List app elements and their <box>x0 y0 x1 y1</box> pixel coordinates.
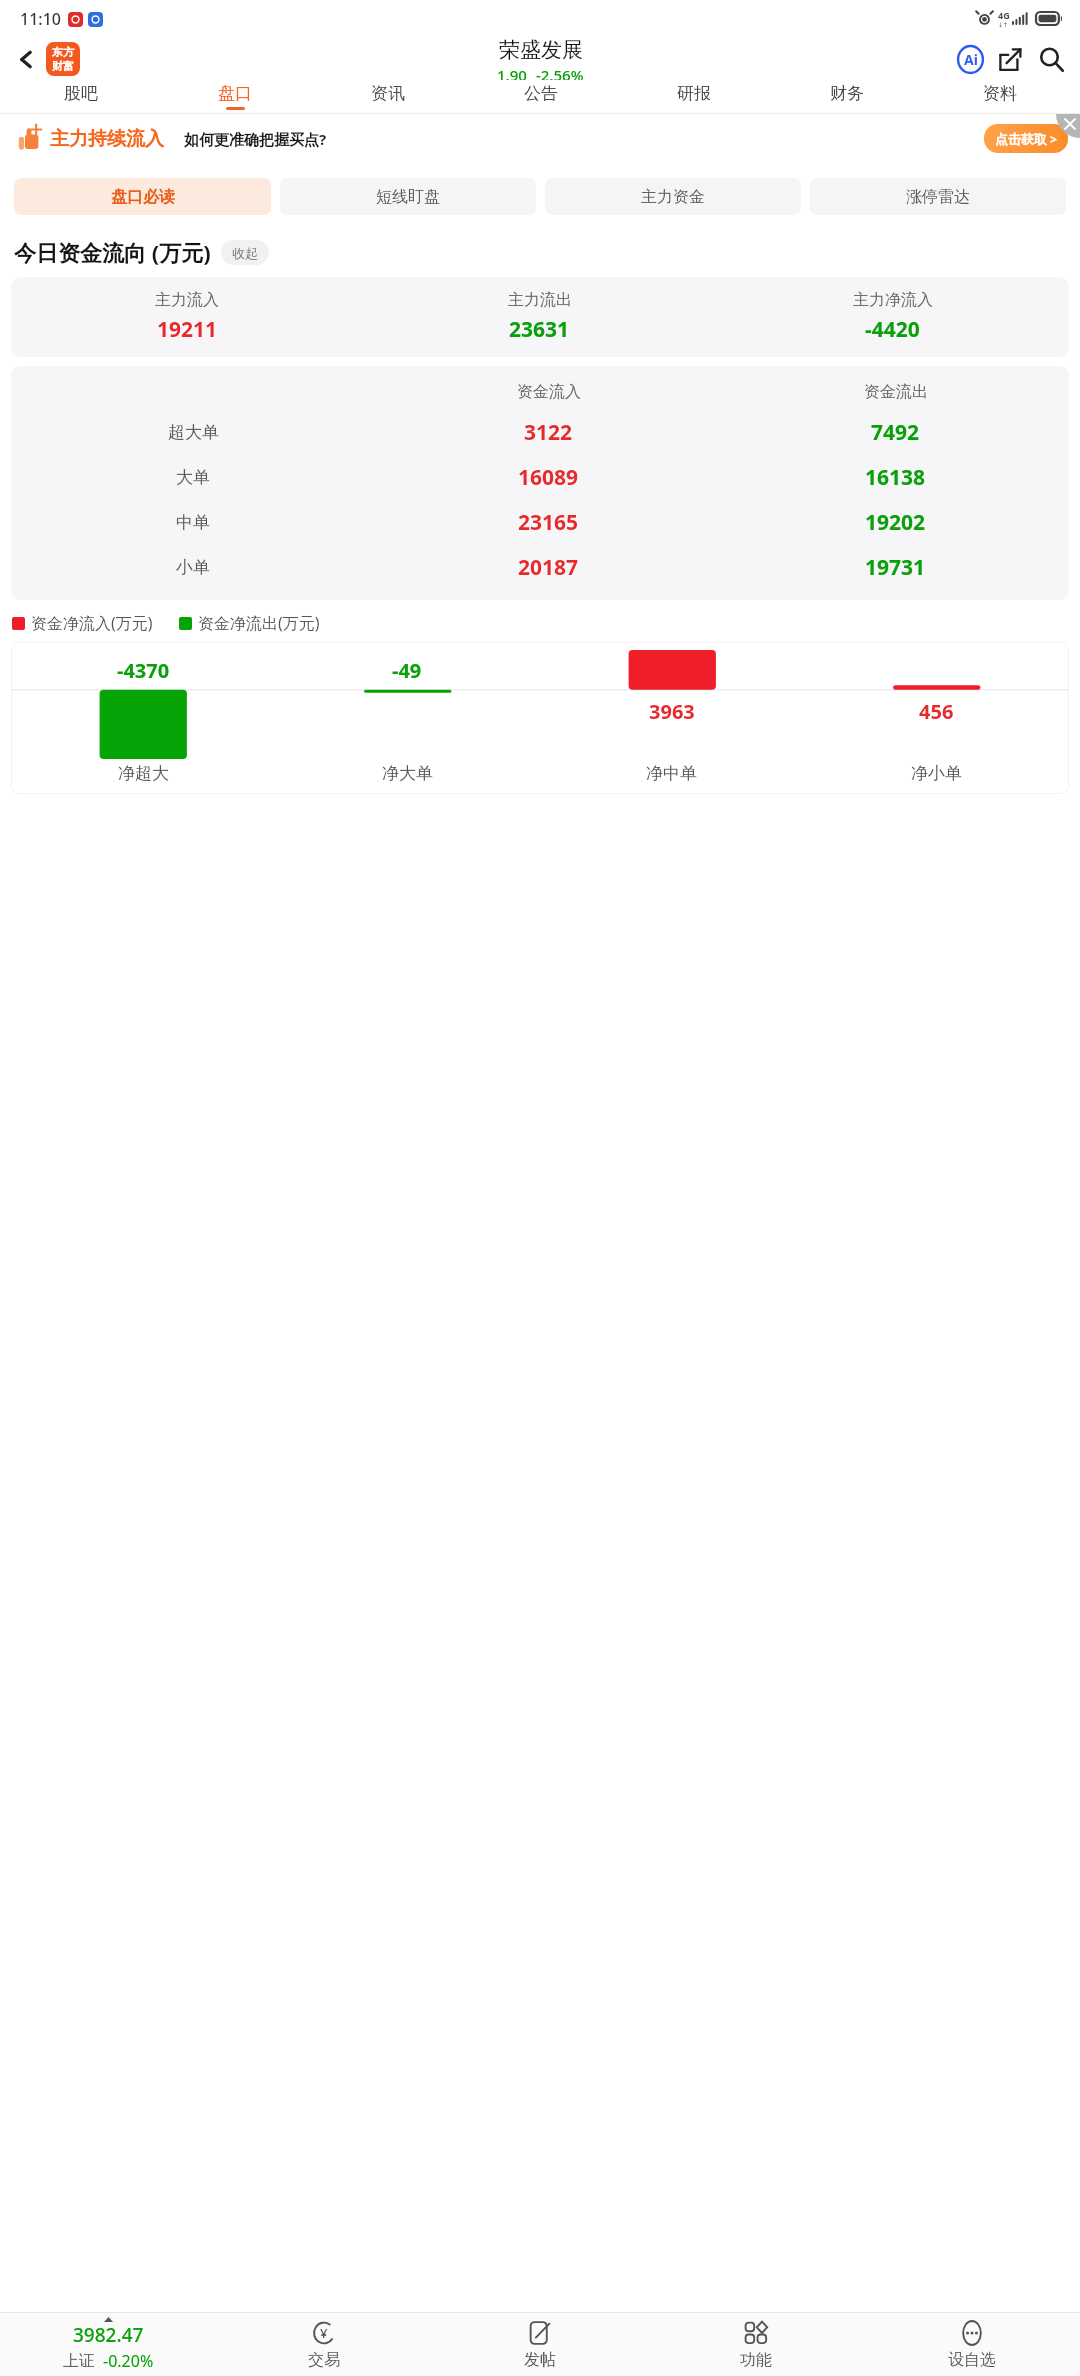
staticText: 小单 <box>176 557 210 578</box>
staticText: 净超大 <box>118 763 169 784</box>
staticText: 研报 <box>677 83 711 104</box>
button[interactable]: 主力资金 <box>545 178 801 215</box>
staticText: 盘口 <box>218 83 252 104</box>
staticText: 1.90 <box>497 65 527 80</box>
staticText: 23631 <box>509 315 570 344</box>
button[interactable]: 研报 <box>617 80 770 113</box>
staticText: 20187 <box>518 553 579 582</box>
staticText: 456 <box>919 698 954 725</box>
staticText: 净小单 <box>911 763 962 784</box>
staticText: 今日资金流向 (万元) <box>14 237 211 267</box>
staticText: -2.56% <box>536 65 584 80</box>
button[interactable]: ¥ <box>216 2313 432 2376</box>
button[interactable]: 超大单 <box>11 418 1069 447</box>
button[interactable]: 3982.47 <box>0 2313 216 2376</box>
staticText: ↓↑ <box>998 21 1009 28</box>
staticText: 资金净流出(万元) <box>198 612 320 634</box>
staticText: 主力流入 <box>155 290 219 310</box>
staticText: -4370 <box>117 657 170 684</box>
staticText: 主力净流入 <box>853 290 933 310</box>
button[interactable]: East Money home <box>46 42 80 76</box>
staticText: 功能 <box>740 2350 772 2370</box>
staticText: -4420 <box>865 315 920 344</box>
staticText: 公告 <box>524 83 558 104</box>
staticText: 超大单 <box>168 422 219 443</box>
staticText: 23165 <box>518 508 579 537</box>
staticText: > <box>1050 131 1057 147</box>
button[interactable]: 发帖 <box>432 2313 648 2376</box>
button[interactable]: 股吧 <box>4 80 158 113</box>
button[interactable]: 设自选 <box>864 2313 1080 2376</box>
staticText: 19731 <box>865 553 926 582</box>
staticText: -49 <box>392 657 422 684</box>
staticText: 设自选 <box>948 2350 996 2370</box>
button[interactable]: Share <box>990 39 1030 79</box>
staticText: 股吧 <box>64 83 98 104</box>
staticText: 4G <box>998 9 1010 21</box>
staticText: 发帖 <box>524 2350 556 2370</box>
staticText: 短线盯盘 <box>376 187 440 207</box>
staticText: 交易 <box>308 2350 340 2370</box>
button[interactable]: Search <box>1030 38 1072 80</box>
staticText: 3963 <box>649 698 695 725</box>
button[interactable]: 财务 <box>770 80 923 113</box>
button[interactable]: 收起 <box>221 240 269 265</box>
staticText: 盘口必读 <box>111 187 175 207</box>
staticText: ¥ <box>320 2324 328 2342</box>
button[interactable]: 点击获取 <box>984 124 1068 153</box>
staticText: 如何更准确把握买点? <box>184 129 327 149</box>
button[interactable]: 小单 <box>11 553 1069 582</box>
staticText: 16138 <box>865 463 926 492</box>
staticText: 3122 <box>524 418 573 447</box>
staticText: 荣盛发展 <box>499 37 583 63</box>
staticText: 资金流出 <box>864 382 928 402</box>
staticText: 主力资金 <box>641 187 705 207</box>
staticText: 资金净流入(万元) <box>31 612 153 634</box>
staticText: 点击获取 <box>995 131 1047 147</box>
staticText: 16089 <box>518 463 579 492</box>
staticText: 大单 <box>176 467 210 488</box>
staticText: 收起 <box>232 245 258 261</box>
staticText: 19202 <box>865 508 926 537</box>
button[interactable]: 盘口必读 <box>14 178 271 215</box>
staticText: 东方 <box>52 45 74 59</box>
staticText: 11:10 <box>20 8 61 30</box>
button[interactable]: 主力流入 <box>11 277 1069 357</box>
staticText: 资金流入 <box>517 382 581 402</box>
button[interactable]: 资讯 <box>311 80 464 113</box>
staticText: 财务 <box>830 83 864 104</box>
staticText: 7492 <box>871 418 920 447</box>
button[interactable]: 中单 <box>11 508 1069 537</box>
staticText: 资料 <box>983 83 1017 104</box>
staticText: 财富 <box>52 59 74 73</box>
staticText: 19211 <box>157 315 218 344</box>
staticText: 3982.47 <box>73 2322 144 2348</box>
button[interactable]: 主力持续流入 <box>0 114 1080 163</box>
button[interactable]: 短线盯盘 <box>280 178 536 215</box>
staticText: 主力持续流入 <box>50 127 164 151</box>
staticText: 净中单 <box>646 763 697 784</box>
button[interactable]: 公告 <box>464 80 617 113</box>
button[interactable]: 大单 <box>11 463 1069 492</box>
button[interactable]: AI <box>950 39 990 79</box>
staticText: 资讯 <box>371 83 405 104</box>
button[interactable]: Back <box>6 39 46 79</box>
button[interactable]: Close ad <box>1056 114 1080 138</box>
button[interactable]: 资料 <box>923 80 1076 113</box>
staticText: 主力流出 <box>508 290 572 310</box>
button[interactable]: 功能 <box>648 2313 864 2376</box>
staticText: -0.20% <box>103 2350 154 2372</box>
staticText: Ai <box>964 50 978 69</box>
staticText: 净大单 <box>382 763 433 784</box>
button[interactable]: 盘口 <box>158 80 311 113</box>
button[interactable]: 涨停雷达 <box>810 178 1066 215</box>
staticText: 上证 <box>63 2351 95 2371</box>
staticText: 涨停雷达 <box>906 187 970 207</box>
staticText: 中单 <box>176 512 210 533</box>
